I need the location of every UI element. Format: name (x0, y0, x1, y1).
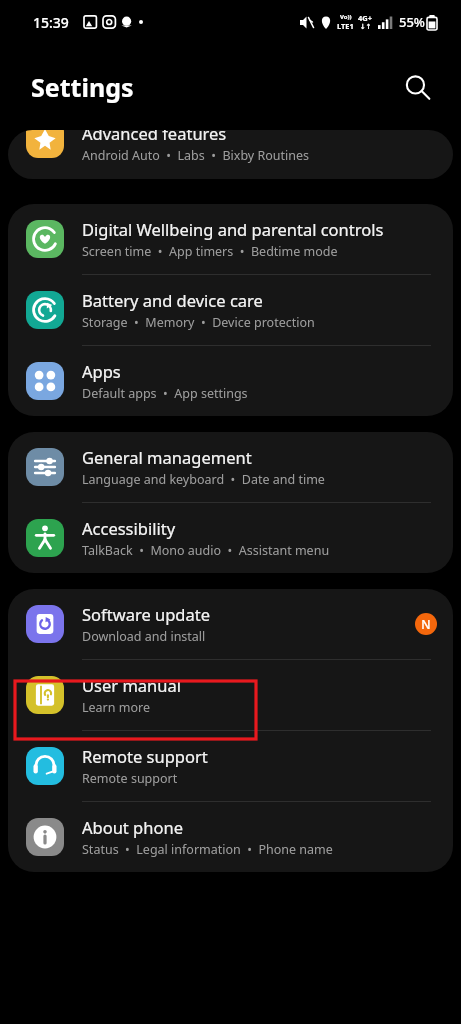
staticText: General management (82, 446, 252, 468)
staticText: 55% (399, 13, 425, 31)
staticText: Screen time • App timers • Bedtime mode (82, 243, 338, 260)
button[interactable]: Digital Wellbeing and parental controls (8, 204, 453, 274)
staticText: User manual (82, 674, 181, 696)
button[interactable]: Battery and device care (8, 275, 453, 345)
button[interactable]: Apps (8, 346, 453, 416)
button[interactable]: Search (395, 65, 439, 109)
staticText: Apps (82, 360, 121, 382)
staticText: Default apps • App settings (82, 385, 248, 402)
staticText: Download and install (82, 628, 206, 645)
staticText: Status • Legal information • Phone name (82, 841, 333, 858)
button[interactable]: Remote support (8, 731, 453, 801)
staticText: Android Auto • Labs • Bixby Routines (82, 147, 310, 164)
staticText: About phone (82, 816, 183, 838)
staticText: Remote support (82, 745, 208, 767)
staticText: LTE1 (337, 21, 354, 31)
staticText: Storage • Memory • Device protection (82, 314, 315, 331)
staticText: Remote support (82, 770, 178, 787)
staticText: Battery and device care (82, 289, 263, 311)
button[interactable]: General management (8, 432, 453, 502)
staticText: Digital Wellbeing and parental controls (82, 218, 384, 240)
button[interactable]: User manual (8, 660, 453, 730)
button[interactable]: Accessibility (8, 503, 453, 573)
button[interactable]: About phone (8, 802, 453, 872)
button[interactable]: Advanced features (8, 130, 453, 179)
staticText: Learn more (82, 699, 150, 716)
staticText: Advanced features (82, 130, 227, 144)
staticText: ↓↑ (360, 23, 372, 31)
staticText: 4G+ (358, 13, 373, 23)
button[interactable]: Software update (8, 589, 453, 659)
staticText: Settings (31, 70, 134, 104)
staticText: TalkBack • Mono audio • Assistant menu (82, 542, 330, 559)
staticText: N (421, 616, 431, 632)
staticText: Software update (82, 603, 210, 625)
staticText: Vo)) (340, 13, 352, 21)
staticText: Accessibility (82, 517, 176, 539)
staticText: 15:39 (33, 13, 69, 32)
staticText: Language and keyboard • Date and time (82, 471, 325, 488)
